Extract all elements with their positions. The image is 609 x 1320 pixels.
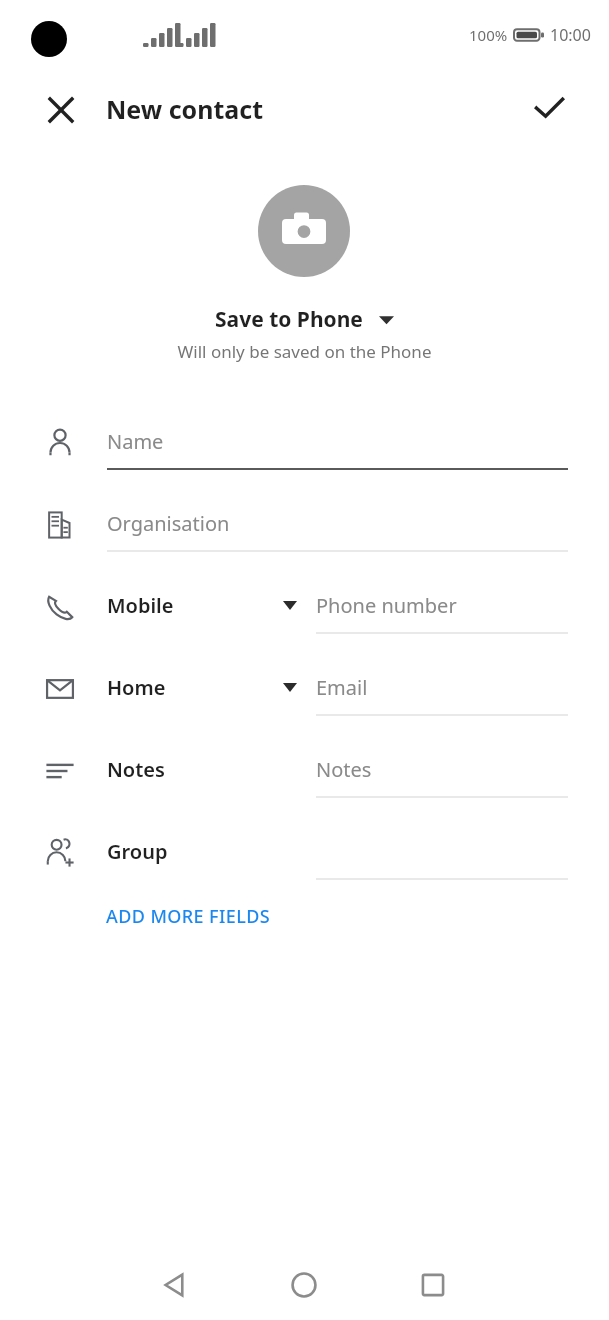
staticText: New contact: [106, 92, 264, 126]
staticText: Notes: [316, 756, 372, 783]
button[interactable]: Name: [0, 409, 609, 477]
button[interactable]: Group: [0, 819, 609, 887]
button[interactable]: Mobile phone number: [0, 573, 609, 641]
staticText: Will only be saved on the Phone: [0, 340, 609, 363]
staticText: Mobile: [107, 592, 174, 619]
button[interactable]: Save: [521, 80, 577, 136]
staticText: Phone number: [316, 592, 457, 619]
button[interactable]: Save to Phone: [209, 303, 400, 336]
button[interactable]: Organisation: [0, 491, 609, 559]
button[interactable]: Home: [276, 1257, 332, 1313]
staticText: Notes: [107, 756, 165, 783]
button[interactable]: Back: [147, 1257, 203, 1313]
button[interactable]: Recent apps: [405, 1257, 461, 1313]
staticText: Save to Phone: [215, 305, 363, 334]
staticText: Group: [107, 838, 168, 865]
button[interactable]: Close: [33, 82, 89, 138]
staticText: Organisation: [107, 510, 230, 537]
staticText: ADD MORE FIELDS: [106, 904, 271, 929]
staticText: Home: [107, 674, 166, 701]
button[interactable]: ADD MORE FIELDS: [92, 898, 285, 935]
button[interactable]: Notes: [0, 737, 609, 805]
staticText: Email: [316, 674, 368, 701]
button[interactable]: Add photo: [258, 185, 350, 277]
staticText: Name: [107, 428, 164, 455]
staticText: 10:00: [550, 24, 591, 46]
staticText: 100%: [469, 25, 508, 45]
button[interactable]: Home email: [0, 655, 609, 723]
